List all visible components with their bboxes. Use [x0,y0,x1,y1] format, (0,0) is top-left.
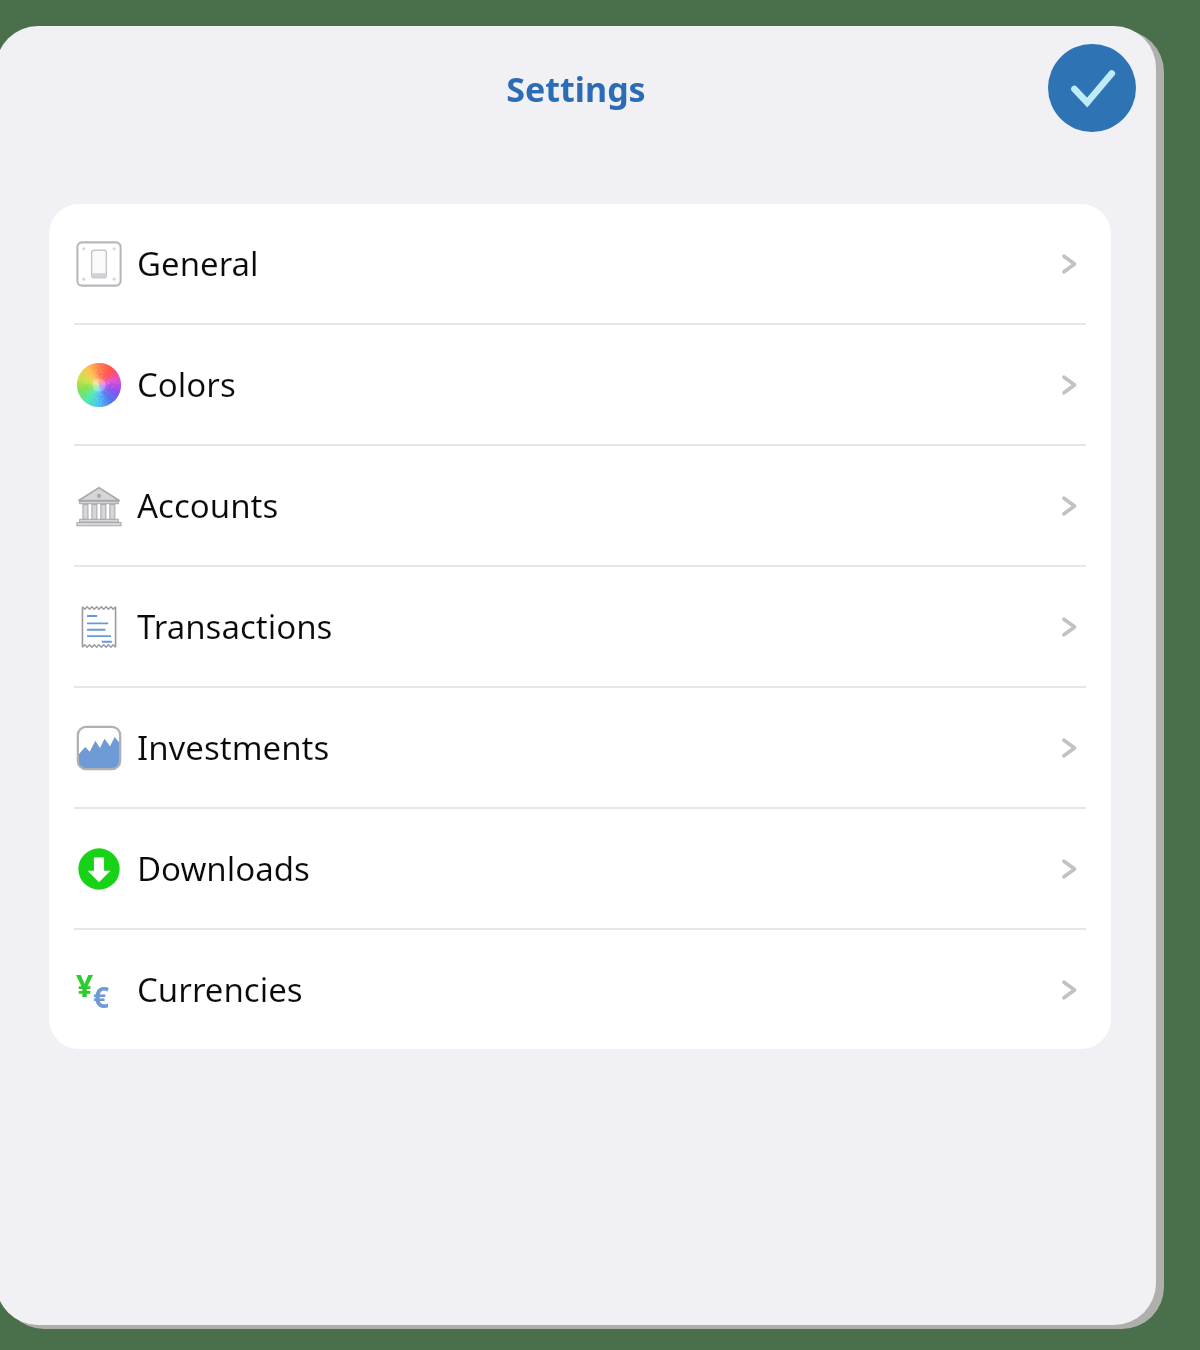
staticText: ¥ [76,965,94,1006]
staticText: Currencies [137,967,303,1012]
button[interactable]: Accounts [49,446,1111,565]
button[interactable]: General [49,204,1111,323]
staticText: € [93,978,110,1016]
staticText: Downloads [137,846,310,891]
staticText: Colors [137,362,236,407]
button[interactable]: Colors [49,325,1111,444]
button[interactable]: Done [1048,44,1136,132]
button[interactable]: Downloads [49,809,1111,928]
button[interactable]: Transactions [49,567,1111,686]
button[interactable]: ¥ [49,930,1111,1049]
staticText: Transactions [137,604,333,649]
staticText: Investments [137,725,330,770]
button[interactable]: Investments [49,688,1111,807]
staticText: Accounts [137,483,279,528]
staticText: Settings [0,66,1156,112]
staticText: General [137,241,259,286]
